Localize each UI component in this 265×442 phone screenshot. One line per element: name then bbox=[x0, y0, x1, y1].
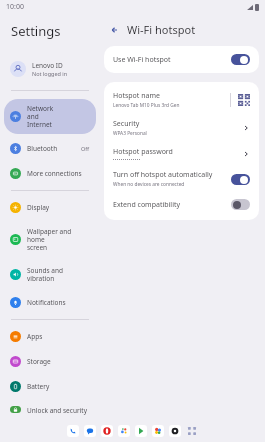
button[interactable]: Battery bbox=[4, 376, 96, 397]
staticText: Unlock and security bbox=[27, 406, 87, 413]
staticText: Display bbox=[27, 203, 50, 212]
button[interactable]: Notifications bbox=[4, 292, 96, 313]
button[interactable]: Wallpaper and home screen bbox=[4, 222, 96, 257]
staticText: Apps bbox=[27, 332, 43, 341]
staticText: More connections bbox=[27, 169, 82, 178]
button[interactable]: Use Wi-Fi hotspot bbox=[104, 46, 259, 73]
staticText: When no devices are connected bbox=[113, 181, 185, 188]
staticText: Turn off hotspot automatically bbox=[113, 170, 213, 180]
button[interactable]: Network and Internet bbox=[4, 99, 96, 134]
button[interactable]: Display bbox=[4, 197, 96, 218]
staticText: Off bbox=[81, 145, 90, 152]
button[interactable]: Back bbox=[108, 23, 122, 37]
staticText: WPA3 Personal bbox=[113, 130, 147, 137]
button[interactable]: Photos bbox=[152, 425, 164, 437]
staticText: Not logged in bbox=[32, 70, 68, 77]
button[interactable]: Turn off hotspot automatically bbox=[104, 165, 259, 193]
button[interactable]: Hotspot password bbox=[104, 142, 259, 165]
staticText: Battery bbox=[27, 382, 50, 391]
button[interactable]: More connections bbox=[4, 163, 96, 184]
staticText: Settings bbox=[11, 22, 61, 40]
button[interactable]: Security bbox=[104, 114, 259, 142]
button[interactable]: Share QR code bbox=[238, 94, 250, 106]
staticText: Network and Internet bbox=[27, 104, 54, 129]
button[interactable]: Storage bbox=[4, 351, 96, 372]
staticText: Notifications bbox=[27, 298, 66, 307]
staticText: Lenovo ID bbox=[32, 61, 63, 70]
button[interactable]: On bbox=[231, 54, 250, 65]
staticText: Extend compatibility bbox=[113, 200, 231, 210]
staticText: Use Wi-Fi hotspot bbox=[113, 55, 231, 65]
button[interactable]: All apps bbox=[186, 425, 198, 437]
button[interactable]: Off bbox=[231, 199, 250, 210]
staticText: 10:00 bbox=[6, 2, 24, 12]
button[interactable]: Settings bbox=[169, 425, 181, 437]
staticText: Storage bbox=[27, 357, 51, 366]
staticText: Hotspot password bbox=[113, 147, 173, 157]
button[interactable]: Apps bbox=[4, 326, 96, 347]
staticText: Sounds and vibration bbox=[27, 266, 90, 283]
button[interactable]: Play Store bbox=[135, 425, 147, 437]
button[interactable]: Unlock and security bbox=[4, 401, 96, 418]
button[interactable]: Opera bbox=[101, 425, 113, 437]
button[interactable]: Extend compatibility bbox=[104, 193, 259, 216]
staticText: Wi-Fi hotspot bbox=[127, 22, 196, 37]
button[interactable]: Sounds and vibration bbox=[4, 261, 96, 288]
button[interactable]: Bluetooth bbox=[4, 138, 96, 159]
button[interactable]: Assistant bbox=[118, 425, 130, 437]
staticText: Security bbox=[113, 119, 140, 129]
button[interactable]: Lenovo ID bbox=[4, 56, 96, 82]
staticText: Hotspot name bbox=[113, 91, 160, 101]
staticText: Wallpaper and home screen bbox=[27, 227, 90, 252]
staticText: Bluetooth bbox=[27, 144, 58, 153]
staticText: Lenovo Tab M10 Plus 3rd Gen bbox=[113, 102, 180, 109]
button[interactable]: Phone bbox=[67, 425, 79, 437]
button[interactable]: Hotspot name bbox=[104, 86, 259, 114]
button[interactable]: On bbox=[231, 174, 250, 185]
button[interactable]: Messages bbox=[84, 425, 96, 437]
